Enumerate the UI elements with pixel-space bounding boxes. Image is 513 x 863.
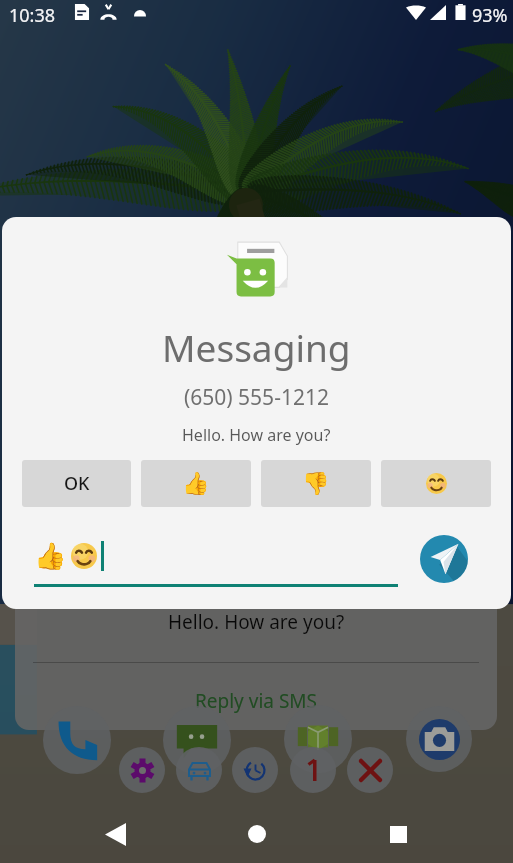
- staticText: 👍: [182, 471, 210, 497]
- button[interactable]: [381, 460, 491, 507]
- button[interactable]: Play Store: [284, 705, 352, 773]
- button[interactable]: Back: [89, 808, 141, 860]
- staticText: OK: [64, 471, 90, 496]
- button[interactable]: 👍: [141, 460, 251, 507]
- staticText: Reply via SMS: [195, 688, 317, 714]
- button[interactable]: Phone: [43, 706, 111, 774]
- button[interactable]: Reply via SMS: [189, 682, 323, 720]
- button[interactable]: Settings: [119, 747, 165, 793]
- staticText: Hello. How are you?: [168, 609, 345, 635]
- button[interactable]: History: [232, 747, 278, 793]
- staticText: Hello. How are you?: [182, 424, 331, 446]
- staticText: Messaging: [162, 322, 351, 372]
- button[interactable]: Android Auto: [176, 747, 222, 793]
- staticText: 👍: [34, 541, 67, 571]
- staticText: 10:38: [9, 3, 56, 28]
- button[interactable]: OK: [22, 460, 131, 507]
- button[interactable]: Home: [231, 808, 283, 860]
- button[interactable]: 👎: [261, 460, 371, 507]
- button[interactable]: Camera: [406, 706, 472, 772]
- staticText: (650) 555-1212: [184, 383, 329, 412]
- button[interactable]: Send: [420, 535, 468, 583]
- staticText: 93%: [472, 3, 508, 28]
- button[interactable]: One notification: [290, 747, 336, 793]
- button[interactable]: Recents: [372, 808, 424, 860]
- button[interactable]: Dismiss: [347, 747, 393, 793]
- staticText: 👎: [302, 471, 330, 497]
- button[interactable]: Messaging: [163, 706, 231, 774]
